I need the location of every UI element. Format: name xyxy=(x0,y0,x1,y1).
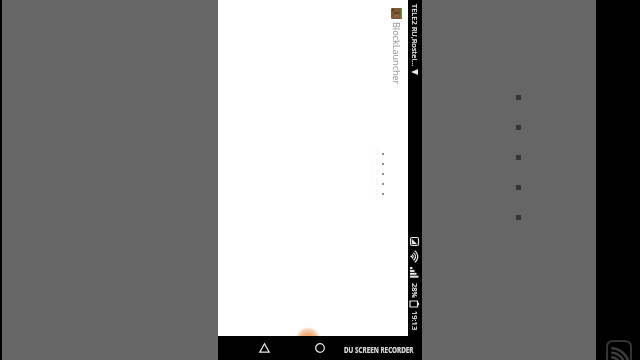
button[interactable]: Back xyxy=(256,340,272,356)
staticText: DU SCREEN RECORDER xyxy=(344,343,414,355)
button[interactable]: Item xyxy=(371,189,385,199)
button[interactable]: Item xyxy=(371,149,385,159)
button[interactable]: Item xyxy=(371,179,385,189)
button[interactable]: Item xyxy=(371,169,385,179)
staticText: TELE2 RU,Rostel... xyxy=(410,4,420,67)
staticText: 28% xyxy=(410,283,420,298)
button[interactable]: Add xyxy=(292,320,324,336)
button[interactable]: BlockLauncher xyxy=(386,0,408,336)
staticText: BlockLauncher xyxy=(391,22,403,85)
staticText: 19:13 xyxy=(410,311,420,331)
button[interactable]: Item xyxy=(371,159,385,169)
button[interactable]: Home xyxy=(312,340,328,356)
